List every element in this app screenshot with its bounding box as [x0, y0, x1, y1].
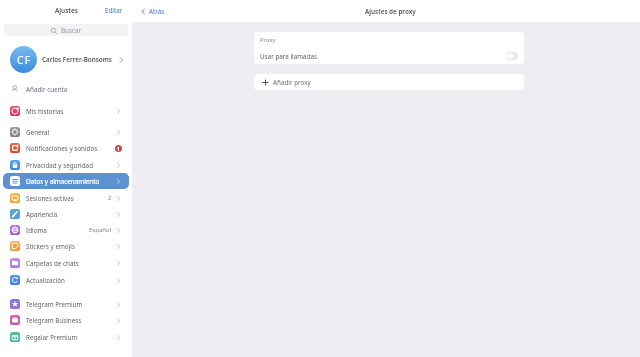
button[interactable]: Notificaciones y sonidos [3, 140, 129, 156]
button[interactable]: Telegram Premium [3, 296, 129, 312]
button[interactable]: Carpetas de chats [3, 255, 129, 271]
staticText: Datos y almacenamiento [26, 177, 100, 186]
staticText: Privacidad y seguridad [26, 161, 94, 170]
staticText: Actualización [26, 276, 65, 285]
staticText: Español [89, 226, 112, 234]
staticText: Editar [105, 6, 123, 15]
button[interactable]: Regalar Premium [3, 329, 129, 345]
button[interactable]: Añadir proxy [254, 74, 524, 90]
button[interactable]: Stickers y emojis [3, 238, 129, 254]
button[interactable]: Usar para llamadas, desactivado [506, 52, 518, 60]
staticText: 2 [108, 194, 112, 202]
button[interactable]: Atrás [139, 5, 166, 18]
button[interactable]: Sesiones activas [3, 190, 129, 206]
staticText: Atrás [149, 7, 165, 16]
button[interactable]: Buscar [4, 24, 128, 36]
staticText: Apariencia [26, 210, 58, 219]
button[interactable]: General [3, 124, 129, 140]
staticText: 1 [117, 146, 120, 152]
staticText: Notificaciones y sonidos [26, 144, 98, 153]
staticText: General [26, 128, 50, 137]
staticText: Regalar Premium [26, 333, 78, 342]
button[interactable]: Telegram Business [3, 312, 129, 328]
staticText: CF [17, 53, 32, 67]
button[interactable]: Añadir cuenta [11, 81, 132, 97]
staticText: Añadir cuenta [26, 85, 68, 94]
staticText: Usar para llamadas [260, 52, 318, 61]
staticText: Ajustes de proxy [365, 7, 416, 16]
button[interactable]: Actualización [3, 272, 129, 288]
button[interactable]: CF [10, 46, 125, 73]
staticText: Mis historias [26, 107, 64, 116]
staticText: Añadir proxy [273, 78, 311, 87]
button[interactable]: Mis historias [3, 103, 129, 119]
button[interactable]: Idioma [3, 222, 129, 238]
staticText: Stickers y emojis [26, 242, 75, 251]
staticText: Telegram Business [26, 316, 82, 325]
staticText: Telegram Premium [26, 300, 83, 309]
staticText: Buscar [61, 26, 82, 35]
button[interactable]: Apariencia [3, 206, 129, 222]
staticText: Ajustes [55, 6, 78, 15]
staticText: Proxy [260, 36, 276, 44]
button[interactable]: Usar para llamadas [260, 48, 518, 64]
button[interactable]: Editar [105, 6, 123, 15]
staticText: Carpetas de chats [26, 259, 79, 268]
button[interactable]: Datos y almacenamiento [3, 173, 129, 189]
staticText: Idioma [26, 226, 47, 235]
staticText: Carlos Ferrer-Bonsoms [42, 55, 112, 64]
staticText: Sesiones activas [26, 194, 74, 203]
button[interactable]: Privacidad y seguridad [3, 157, 129, 173]
